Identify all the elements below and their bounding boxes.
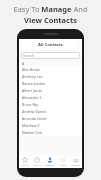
staticText: View Contacts: [24, 15, 77, 25]
button[interactable]: Alexander S.: [19, 94, 82, 101]
button[interactable]: Alex Brown: [19, 66, 82, 73]
staticText: Search: [23, 53, 34, 58]
staticText: All Contacts: [38, 42, 63, 48]
staticText: Contacts: [45, 164, 54, 167]
button[interactable]: Barton Jordan: [19, 80, 82, 87]
staticText: Albert Jacob: [22, 88, 42, 93]
staticText: Amanda Carter: [22, 116, 47, 121]
staticText: Matthew Z.: [22, 123, 41, 128]
staticText: Anthony Lee: [22, 74, 43, 79]
button[interactable]: Andrew Daniel: [19, 108, 82, 115]
staticText: Recents: [33, 164, 42, 167]
staticText: A: [22, 62, 25, 66]
button[interactable]: Nathan Cole: [19, 129, 82, 136]
staticText: Bruce Ray: [22, 102, 39, 107]
button[interactable]: Anthony Lee: [19, 73, 82, 80]
button[interactable]: Bruce Ray: [19, 101, 82, 108]
button[interactable]: Contacts: [43, 156, 56, 168]
button[interactable]: Search: [21, 52, 80, 59]
staticText: Favorites: [20, 164, 30, 167]
button[interactable]: Matthew Z.: [19, 122, 82, 129]
button[interactable]: Amanda Carter: [19, 115, 82, 122]
button[interactable]: Recents: [31, 156, 43, 168]
staticText: Alex Brown: [22, 67, 41, 72]
staticText: Andrew Daniel: [22, 109, 46, 114]
staticText: Nathan Cole: [22, 130, 43, 135]
button[interactable]: Keypad: [56, 156, 69, 168]
staticText: Alexander S.: [22, 95, 43, 100]
button[interactable]: Favorites: [19, 156, 31, 168]
staticText: Barton Jordan: [22, 81, 45, 86]
staticText: Easy To Manage And: [13, 4, 88, 14]
button[interactable]: Voicemail: [69, 156, 82, 168]
button[interactable]: Albert Jacob: [19, 87, 82, 94]
staticText: Voicemail: [71, 164, 81, 167]
staticText: Keypad: [59, 164, 67, 167]
